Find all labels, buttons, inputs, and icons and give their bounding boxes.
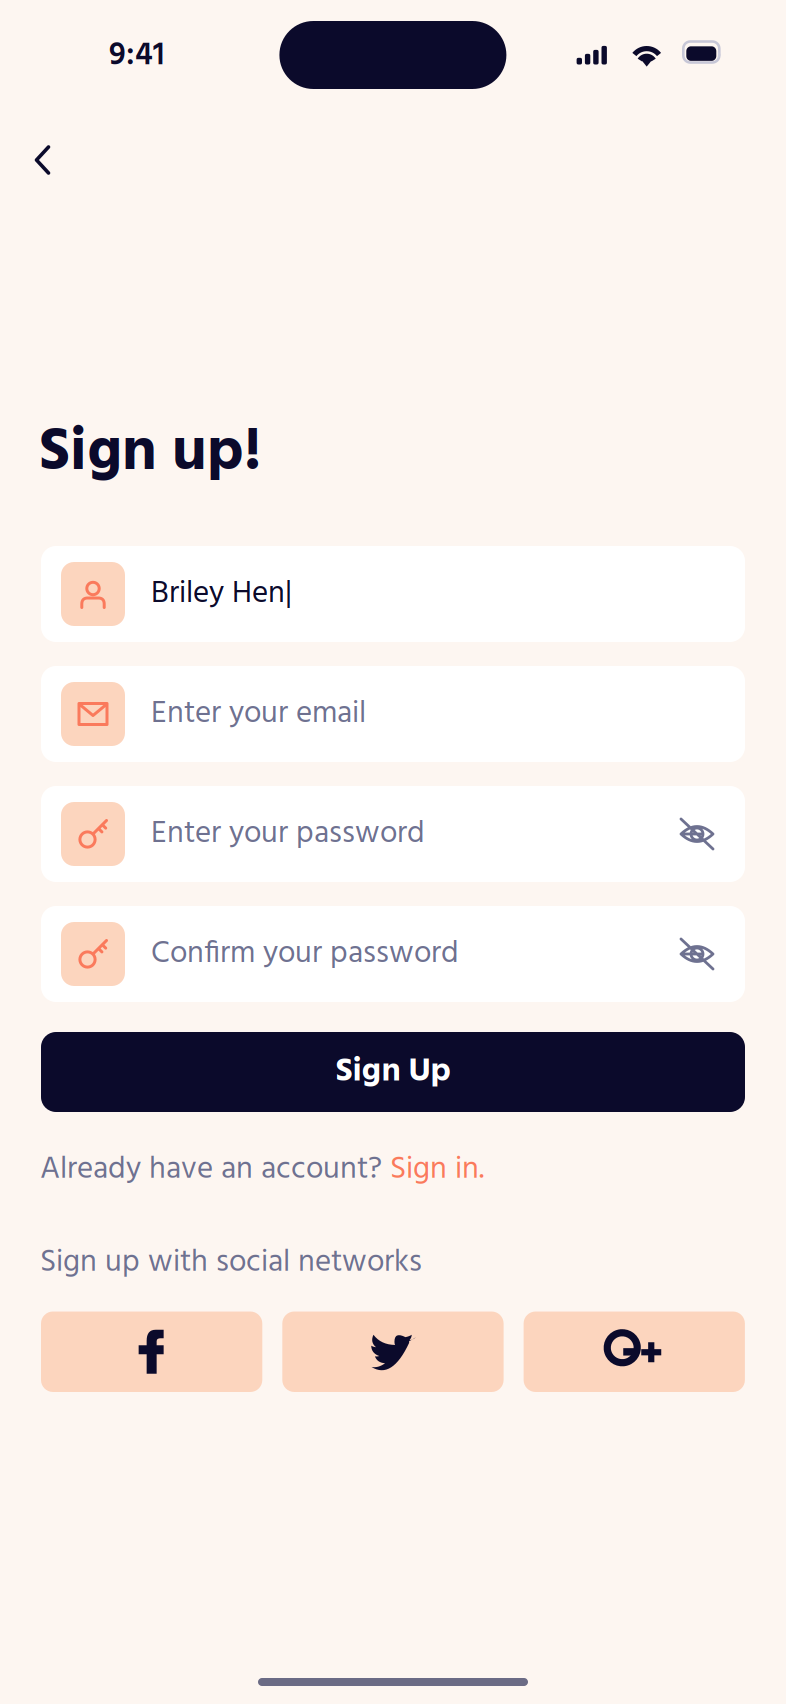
staticText: Briley Hen|: [151, 569, 292, 619]
button[interactable]: Sign up with Twitter: [282, 1311, 504, 1392]
button[interactable]: Enter your email: [41, 666, 745, 762]
staticText: Sign in.: [390, 1145, 484, 1195]
button[interactable]: Sign in.: [390, 1145, 484, 1195]
staticText: Already have an account?: [40, 1145, 390, 1195]
staticText: Confirm your password: [151, 929, 459, 979]
button[interactable]: Confirm your password: [41, 906, 745, 1002]
staticText: 9:41: [109, 30, 164, 82]
button[interactable]: Back: [16, 129, 70, 191]
button[interactable]: Enter your password: [41, 786, 745, 882]
button[interactable]: Sign up with Facebook: [41, 1311, 262, 1392]
staticText: Enter your email: [151, 689, 366, 739]
staticText: Enter your password: [151, 809, 425, 859]
staticText: Sign Up: [335, 1045, 450, 1099]
staticText: Sign up with social networks: [40, 1238, 422, 1288]
button[interactable]: Sign up with Google: [524, 1311, 745, 1392]
staticText: Sign up!: [39, 406, 261, 502]
button[interactable]: Sign Up: [41, 1032, 745, 1112]
button[interactable]: Briley Hen|: [41, 546, 745, 642]
